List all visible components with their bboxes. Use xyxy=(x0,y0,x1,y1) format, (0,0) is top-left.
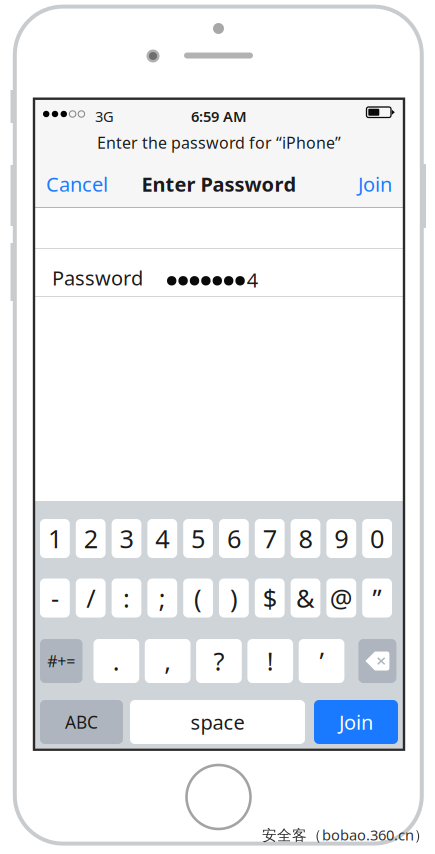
button[interactable]: Join xyxy=(314,700,398,744)
button[interactable]: ; xyxy=(147,578,177,617)
staticText: ! xyxy=(267,644,274,678)
staticText: 4 xyxy=(155,522,169,555)
staticText: : xyxy=(123,581,130,615)
button[interactable]: - xyxy=(40,578,70,617)
button[interactable]: , xyxy=(145,639,190,683)
staticText: . xyxy=(113,644,120,678)
button[interactable]: 5 xyxy=(183,519,213,558)
button[interactable]: 6 xyxy=(219,519,249,558)
button[interactable]: & xyxy=(291,578,320,617)
button[interactable]: 1 xyxy=(40,519,70,558)
button[interactable]: Cancel xyxy=(40,164,114,204)
button[interactable]: 8 xyxy=(291,519,320,558)
button[interactable]: 7 xyxy=(255,519,285,558)
button[interactable]: Join xyxy=(352,164,398,204)
staticText: 7 xyxy=(263,522,277,555)
staticText: 9 xyxy=(334,522,348,555)
staticText: Enter Password xyxy=(141,171,296,197)
button[interactable]: ) xyxy=(219,578,249,617)
staticText: Join xyxy=(339,709,373,735)
staticText: Join xyxy=(358,171,392,197)
staticText: ? xyxy=(213,644,224,678)
button[interactable]: space xyxy=(130,700,305,744)
staticText: ; xyxy=(159,581,166,615)
staticText: 6 xyxy=(227,522,241,555)
staticText: 1 xyxy=(48,522,62,555)
button[interactable]: ’ xyxy=(299,639,344,683)
staticText: 安全客（bobao.360.cn） xyxy=(262,825,429,844)
staticText: #+= xyxy=(47,650,75,672)
button[interactable]: @ xyxy=(326,578,356,617)
button[interactable]: 2 xyxy=(76,519,106,558)
staticText: @ xyxy=(330,581,353,615)
staticText: 4 xyxy=(247,266,258,293)
button[interactable]: : xyxy=(112,578,141,617)
staticText: 3 xyxy=(119,522,133,555)
staticText: / xyxy=(86,581,95,615)
button[interactable]: ( xyxy=(183,578,213,617)
staticText: Enter the password for “iPhone” xyxy=(97,132,341,153)
staticText: Cancel xyxy=(46,171,108,197)
staticText: space xyxy=(190,709,244,735)
staticText: ( xyxy=(194,581,202,615)
staticText: & xyxy=(296,581,315,615)
staticText: 8 xyxy=(298,522,312,555)
staticText: ” xyxy=(373,581,382,615)
staticText: 6:59 AM xyxy=(191,106,247,126)
button[interactable]: $ xyxy=(255,578,285,617)
staticText: $ xyxy=(263,581,277,615)
staticText: ) xyxy=(230,581,238,615)
staticText: Password xyxy=(52,264,143,291)
button[interactable]: #+= xyxy=(40,639,82,683)
button[interactable]: 0 xyxy=(362,519,392,558)
button[interactable]: ” xyxy=(362,578,392,617)
staticText: 3G xyxy=(95,106,114,126)
button[interactable]: / xyxy=(76,578,106,617)
staticText: 0 xyxy=(370,522,384,555)
staticText: ’ xyxy=(320,644,324,678)
button[interactable]: 9 xyxy=(326,519,356,558)
button[interactable]: . xyxy=(93,639,139,683)
button[interactable]: ! xyxy=(247,639,293,683)
button[interactable]: Password xyxy=(34,248,404,297)
button[interactable]: ? xyxy=(196,639,242,683)
button[interactable]: Delete xyxy=(358,639,396,683)
staticText: 2 xyxy=(84,522,98,555)
staticText: - xyxy=(51,581,59,615)
staticText: , xyxy=(164,644,171,678)
staticText: 5 xyxy=(191,522,205,555)
staticText: ABC xyxy=(65,710,98,733)
button[interactable]: 3 xyxy=(112,519,141,558)
button[interactable]: 4 xyxy=(147,519,177,558)
button[interactable]: ABC xyxy=(40,700,123,744)
